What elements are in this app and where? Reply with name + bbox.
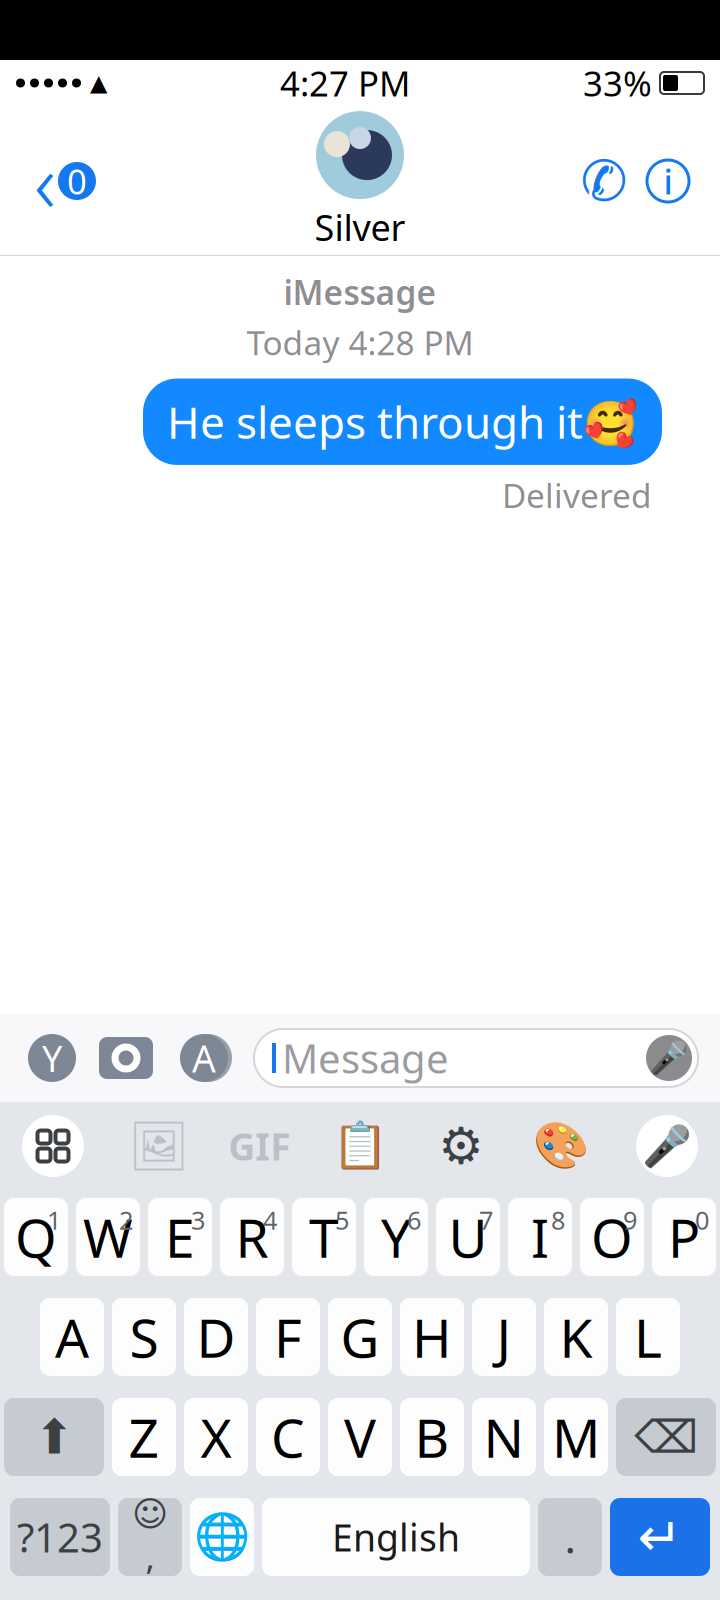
staticText: A bbox=[55, 1302, 89, 1372]
staticText: 7 bbox=[479, 1203, 493, 1237]
staticText: Q bbox=[15, 1202, 57, 1272]
button[interactable]: Numbers and symbols bbox=[10, 1498, 110, 1576]
button[interactable]: L bbox=[616, 1298, 680, 1376]
button[interactable]: Message bbox=[254, 1029, 698, 1087]
button[interactable]: U bbox=[436, 1198, 500, 1276]
staticText: 🎤 bbox=[642, 1123, 692, 1169]
button[interactable]: Settings bbox=[421, 1107, 501, 1185]
staticText: . bbox=[564, 1509, 575, 1565]
button[interactable]: Toolbar bbox=[8, 1107, 98, 1185]
button[interactable]: S bbox=[112, 1298, 176, 1376]
staticText: 2 bbox=[119, 1203, 133, 1237]
button[interactable]: Back bbox=[10, 148, 120, 214]
button[interactable]: G bbox=[328, 1298, 392, 1376]
staticText: ↵ bbox=[637, 1507, 682, 1567]
staticText: V bbox=[344, 1402, 376, 1472]
button[interactable]: Y bbox=[364, 1198, 428, 1276]
button[interactable]: Emoji and comma bbox=[118, 1498, 182, 1576]
staticText: ▲ bbox=[90, 70, 107, 96]
button[interactable]: F bbox=[256, 1298, 320, 1376]
staticText: i bbox=[663, 158, 672, 204]
button[interactable]: C bbox=[256, 1398, 320, 1476]
staticText: , bbox=[145, 1534, 154, 1580]
button[interactable]: Stickers bbox=[119, 1107, 199, 1185]
staticText: M bbox=[552, 1402, 600, 1472]
button[interactable]: E bbox=[148, 1198, 212, 1276]
button[interactable]: Apps bbox=[28, 1034, 76, 1082]
staticText: ⬆ bbox=[34, 1410, 74, 1464]
staticText: N bbox=[483, 1402, 524, 1472]
button[interactable]: Change keyboard language bbox=[190, 1498, 254, 1576]
button[interactable]: App Store bbox=[176, 1034, 232, 1082]
staticText: 5 bbox=[335, 1203, 349, 1237]
staticText: C bbox=[271, 1402, 305, 1472]
button[interactable]: Q bbox=[4, 1198, 68, 1276]
staticText: Y bbox=[42, 1034, 62, 1082]
button[interactable]: R bbox=[220, 1198, 284, 1276]
staticText: I bbox=[531, 1202, 549, 1272]
staticText: R bbox=[235, 1202, 268, 1272]
staticText: W bbox=[83, 1202, 133, 1272]
staticText: 🎨 bbox=[533, 1120, 589, 1172]
staticText: ‹ bbox=[34, 126, 56, 236]
staticText: GIF bbox=[228, 1121, 290, 1171]
staticText: D bbox=[196, 1302, 235, 1372]
button[interactable]: Enter bbox=[610, 1498, 710, 1576]
staticText: J bbox=[496, 1302, 511, 1372]
staticText: 6 bbox=[407, 1203, 421, 1237]
staticText: 0 bbox=[67, 158, 87, 204]
button[interactable]: M bbox=[544, 1398, 608, 1476]
button[interactable]: I bbox=[508, 1198, 572, 1276]
button[interactable]: D bbox=[184, 1298, 248, 1376]
staticText: 📋 bbox=[332, 1120, 388, 1172]
staticText: P bbox=[668, 1202, 700, 1272]
staticText: ⌫ bbox=[634, 1411, 698, 1463]
staticText: O bbox=[591, 1202, 633, 1272]
button[interactable]: O bbox=[580, 1198, 644, 1276]
button[interactable]: W bbox=[76, 1198, 140, 1276]
staticText: ☺ bbox=[132, 1494, 168, 1534]
staticText: T bbox=[309, 1202, 339, 1272]
button[interactable]: Themes bbox=[521, 1107, 601, 1185]
staticText: 1 bbox=[47, 1203, 61, 1237]
staticText: ✆ bbox=[580, 149, 627, 213]
staticText: 🖼 bbox=[128, 1119, 189, 1173]
button[interactable]: Voice input bbox=[622, 1107, 712, 1185]
button[interactable]: Call bbox=[572, 148, 636, 214]
staticText: H bbox=[412, 1302, 452, 1372]
staticText: 4:27 PM bbox=[280, 60, 410, 106]
staticText: Z bbox=[128, 1402, 159, 1472]
button[interactable]: X bbox=[184, 1398, 248, 1476]
button[interactable]: Delete bbox=[616, 1398, 716, 1476]
button[interactable]: H bbox=[400, 1298, 464, 1376]
button[interactable]: GIF bbox=[219, 1107, 299, 1185]
button[interactable]: Clipboard bbox=[320, 1107, 400, 1185]
staticText: 8 bbox=[551, 1203, 565, 1237]
staticText: 4 bbox=[263, 1203, 277, 1237]
button[interactable]: Z bbox=[112, 1398, 176, 1476]
button[interactable]: Period bbox=[538, 1498, 602, 1576]
staticText: L bbox=[634, 1302, 662, 1372]
staticText: X bbox=[200, 1402, 231, 1472]
staticText: E bbox=[165, 1202, 195, 1272]
staticText: B bbox=[414, 1402, 449, 1472]
button[interactable]: B bbox=[400, 1398, 464, 1476]
button[interactable]: Camera bbox=[98, 1034, 154, 1082]
button[interactable]: N bbox=[472, 1398, 536, 1476]
button[interactable]: K bbox=[544, 1298, 608, 1376]
staticText: 0 bbox=[695, 1203, 709, 1237]
button[interactable]: Shift bbox=[4, 1398, 104, 1476]
button[interactable]: Details bbox=[636, 148, 700, 214]
staticText: U bbox=[448, 1202, 487, 1272]
button[interactable]: P bbox=[652, 1198, 716, 1276]
button[interactable]: V bbox=[328, 1398, 392, 1476]
staticText: S bbox=[129, 1302, 158, 1372]
staticText: Delivered bbox=[502, 473, 652, 517]
button[interactable]: A bbox=[40, 1298, 104, 1376]
staticText: Y bbox=[381, 1202, 411, 1272]
button[interactable]: T bbox=[292, 1198, 356, 1276]
button[interactable]: J bbox=[472, 1298, 536, 1376]
staticText: Message bbox=[282, 1031, 449, 1084]
staticText: A bbox=[192, 1033, 216, 1083]
button[interactable]: Space bbox=[262, 1498, 530, 1576]
